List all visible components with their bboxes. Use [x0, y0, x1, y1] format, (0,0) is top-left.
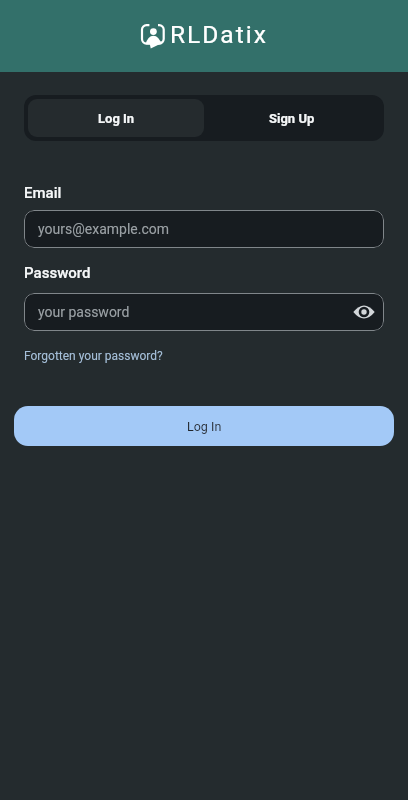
staticText: Password	[24, 264, 91, 282]
staticText: RLDatix	[170, 20, 268, 49]
staticText: Email	[24, 184, 62, 202]
staticText: Sign Up	[269, 111, 315, 126]
button[interactable]	[353, 304, 375, 320]
staticText: yours@example.com	[38, 221, 169, 237]
staticText: your password	[38, 304, 353, 320]
button[interactable]: Log In	[14, 406, 394, 446]
button[interactable]: Forgotten your password?	[24, 349, 163, 363]
button[interactable]: Sign Up	[204, 99, 380, 137]
staticText: Log In	[98, 111, 135, 126]
button[interactable]: yours@example.com	[24, 210, 384, 248]
staticText: Log In	[187, 419, 222, 434]
button[interactable]: your password	[24, 293, 384, 331]
button[interactable]: Log In	[28, 99, 204, 137]
